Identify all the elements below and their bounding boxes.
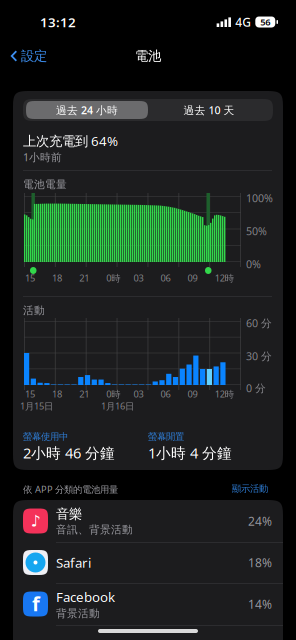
staticText: 0%	[246, 257, 261, 271]
staticText: 03	[133, 272, 143, 284]
staticText: 1月15日	[20, 400, 53, 412]
staticText: 06	[160, 388, 170, 400]
staticText: Facebook	[56, 588, 115, 606]
staticText: 0時	[106, 388, 120, 400]
staticText: 09	[188, 272, 198, 284]
staticText: ♪	[30, 512, 40, 530]
staticText: 電池電量	[23, 178, 67, 191]
button[interactable]: 過去 24 小時	[26, 101, 148, 119]
staticText: 03	[133, 388, 143, 400]
staticText: 背景活動	[56, 607, 100, 620]
staticText: 1小時前	[23, 150, 62, 164]
staticText: 過去 24 小時	[56, 103, 118, 117]
button[interactable]: 設定	[0, 41, 57, 71]
staticText: 56	[260, 16, 270, 28]
staticText: 音訊、背景活動	[56, 523, 133, 536]
button[interactable]: 過去 10 天	[148, 101, 270, 119]
staticText: 電池	[135, 48, 161, 64]
staticText: Safari	[56, 554, 91, 571]
staticText: 12時	[215, 388, 234, 400]
staticText: 1月16日	[101, 400, 134, 412]
staticText: 06	[160, 272, 170, 284]
staticText: 15	[25, 272, 35, 284]
button[interactable]: Safari	[13, 542, 283, 583]
button[interactable]: ♪	[13, 500, 283, 542]
staticText: 60 分	[246, 316, 272, 330]
staticText: 螢幕閒置	[148, 431, 184, 442]
staticText: 13:12	[40, 13, 76, 31]
staticText: 14%	[248, 596, 272, 612]
staticText: 依 APP 分類的電池用量	[23, 483, 118, 495]
staticText: 1小時 4 分鐘	[148, 443, 232, 462]
staticText: 活動	[23, 304, 45, 317]
staticText: 0 分	[246, 381, 266, 395]
staticText: 螢幕使用中	[23, 431, 68, 442]
staticText: 2小時 46 分鐘	[23, 443, 115, 462]
staticText: 18	[52, 272, 62, 284]
staticText: f	[32, 590, 40, 617]
staticText: 設定	[21, 48, 47, 64]
staticText: 21	[79, 272, 89, 284]
staticText: 上次充電到 64%	[23, 132, 118, 150]
staticText: 4G	[235, 14, 251, 30]
staticText: 100%	[246, 191, 273, 205]
staticText: 50%	[246, 224, 267, 238]
staticText: 音樂	[56, 506, 82, 522]
staticText: 18%	[248, 554, 272, 570]
staticText: 09	[188, 388, 198, 400]
staticText: 過去 10 天	[183, 103, 234, 117]
staticText: 顯示活動	[232, 483, 268, 494]
button[interactable]: f	[13, 583, 283, 625]
staticText: 21	[79, 388, 89, 400]
staticText: 24%	[248, 513, 272, 529]
staticText: 12時	[215, 272, 234, 284]
staticText: 15	[25, 388, 35, 400]
staticText: 0時	[106, 272, 120, 284]
staticText: 18	[52, 388, 62, 400]
button[interactable]: 顯示活動	[226, 480, 274, 497]
staticText: 30 分	[246, 349, 272, 363]
